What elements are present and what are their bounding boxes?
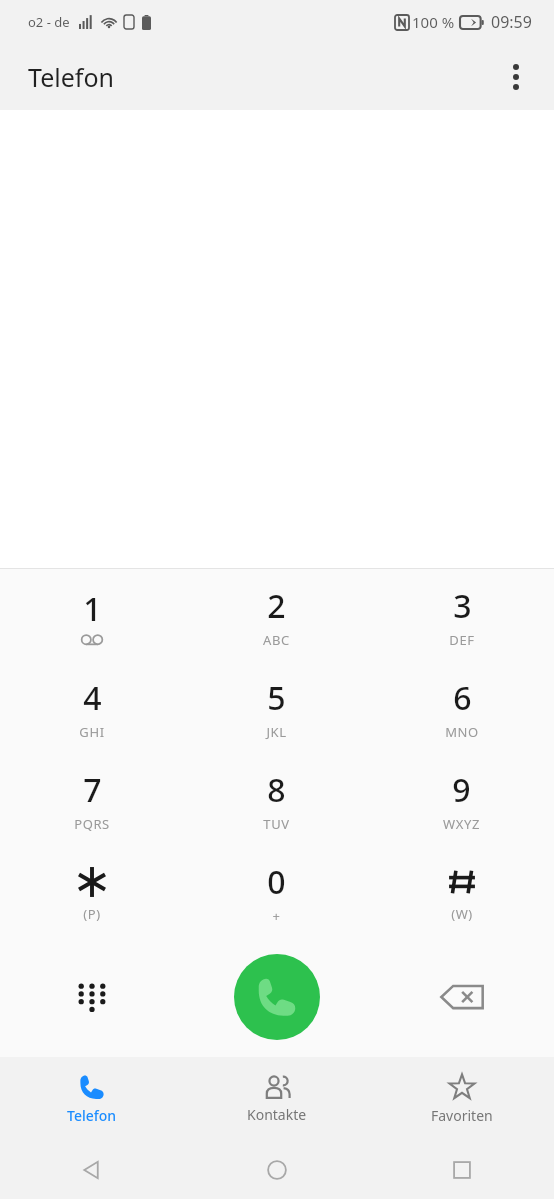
button[interactable]: Home: [184, 1141, 369, 1199]
staticText: Kontakte: [247, 1105, 307, 1124]
button[interactable]: 3: [369, 570, 554, 662]
button[interactable]: 9: [369, 754, 554, 846]
button[interactable]: Backspace: [369, 938, 554, 1055]
staticText: (P): [83, 905, 101, 923]
button[interactable]: 5: [184, 662, 369, 754]
button[interactable]: Favoriten: [369, 1057, 554, 1141]
staticText: 09:59: [491, 11, 532, 33]
staticText: MNO: [445, 723, 479, 741]
button[interactable]: 2: [184, 570, 369, 662]
staticText: TUV: [263, 815, 290, 833]
staticText: o2 - de: [28, 13, 70, 31]
staticText: WXYZ: [443, 815, 480, 833]
staticText: PQRS: [74, 815, 110, 833]
button[interactable]: Telefon: [0, 1057, 184, 1141]
staticText: ABC: [263, 631, 290, 649]
button[interactable]: More options: [492, 53, 540, 101]
staticText: 100 %: [412, 12, 455, 32]
button[interactable]: Dialpad: [0, 938, 184, 1055]
staticText: Telefon: [28, 60, 114, 94]
button[interactable]: 4: [0, 662, 184, 754]
staticText: GHI: [79, 723, 105, 741]
button[interactable]: Back: [0, 1141, 184, 1199]
staticText: 7: [83, 768, 102, 812]
button[interactable]: (W): [369, 846, 554, 938]
staticText: 6: [453, 676, 472, 720]
staticText: Favoriten: [431, 1106, 493, 1125]
button[interactable]: (P): [0, 846, 184, 938]
staticText: 2: [267, 584, 286, 628]
staticText: 9: [452, 768, 471, 812]
button[interactable]: 1: [0, 570, 184, 662]
button[interactable]: Recent apps: [369, 1141, 554, 1199]
button[interactable]: Call: [234, 954, 320, 1040]
staticText: +: [272, 907, 281, 925]
staticText: 0: [267, 860, 286, 904]
staticText: 3: [453, 584, 472, 628]
button[interactable]: 6: [369, 662, 554, 754]
staticText: (W): [451, 905, 473, 923]
button[interactable]: 8: [184, 754, 369, 846]
staticText: Telefon: [67, 1106, 117, 1125]
staticText: 8: [267, 768, 286, 812]
button[interactable]: 0: [184, 846, 369, 938]
button[interactable]: Kontakte: [184, 1057, 369, 1141]
staticText: 1: [83, 587, 102, 631]
staticText: JKL: [266, 723, 287, 741]
staticText: 4: [83, 676, 102, 720]
button[interactable]: 7: [0, 754, 184, 846]
staticText: 5: [267, 676, 286, 720]
staticText: DEF: [449, 631, 475, 649]
